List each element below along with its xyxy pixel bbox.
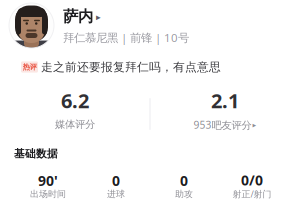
button[interactable]: 萨内: [0, 0, 300, 52]
staticText: 走之前还要报复拜仁吗，有点意思: [41, 60, 221, 74]
staticText: 6.2: [61, 87, 89, 114]
staticText: 0: [180, 171, 188, 190]
staticText: 出场时间: [30, 188, 66, 199]
staticText: 媒体评分: [55, 118, 95, 131]
staticText: 热评: [22, 62, 36, 72]
button[interactable]: 2.1: [150, 92, 300, 136]
staticText: ▸: [252, 121, 256, 129]
staticText: 萨内: [63, 7, 93, 26]
button[interactable]: 热评: [0, 60, 300, 74]
button[interactable]: 6.2: [0, 92, 150, 136]
staticText: 进球: [107, 188, 125, 199]
staticText: ▸: [96, 12, 101, 22]
staticText: 0/0: [241, 171, 263, 189]
staticText: 基础数据: [14, 147, 58, 160]
staticText: 拜仁慕尼黑 | 前锋 | 10号: [63, 30, 189, 45]
staticText: 助攻: [175, 188, 193, 199]
staticText: 0: [112, 171, 120, 190]
staticText: 90': [38, 171, 58, 190]
staticText: 2.1: [211, 87, 239, 114]
staticText: 953吧友评分: [193, 118, 251, 132]
staticText: 射正/射门: [232, 188, 271, 200]
